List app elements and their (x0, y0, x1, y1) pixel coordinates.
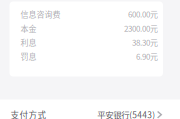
staticText: 利息 (20, 36, 36, 48)
staticText: 罚息 (20, 51, 36, 62)
staticText: 600.00元 (128, 8, 158, 20)
staticText: 平安银行(5443) (97, 109, 155, 119)
staticText: 本金 (20, 22, 36, 34)
staticText: 2300.00元 (124, 22, 158, 34)
button[interactable]: 支付方式 (0, 99, 180, 119)
staticText: 6.90元 (136, 51, 158, 62)
staticText: 38.30元 (132, 36, 158, 48)
staticText: 支付方式 (10, 108, 46, 119)
staticText: 信息咨询费 (20, 8, 60, 20)
